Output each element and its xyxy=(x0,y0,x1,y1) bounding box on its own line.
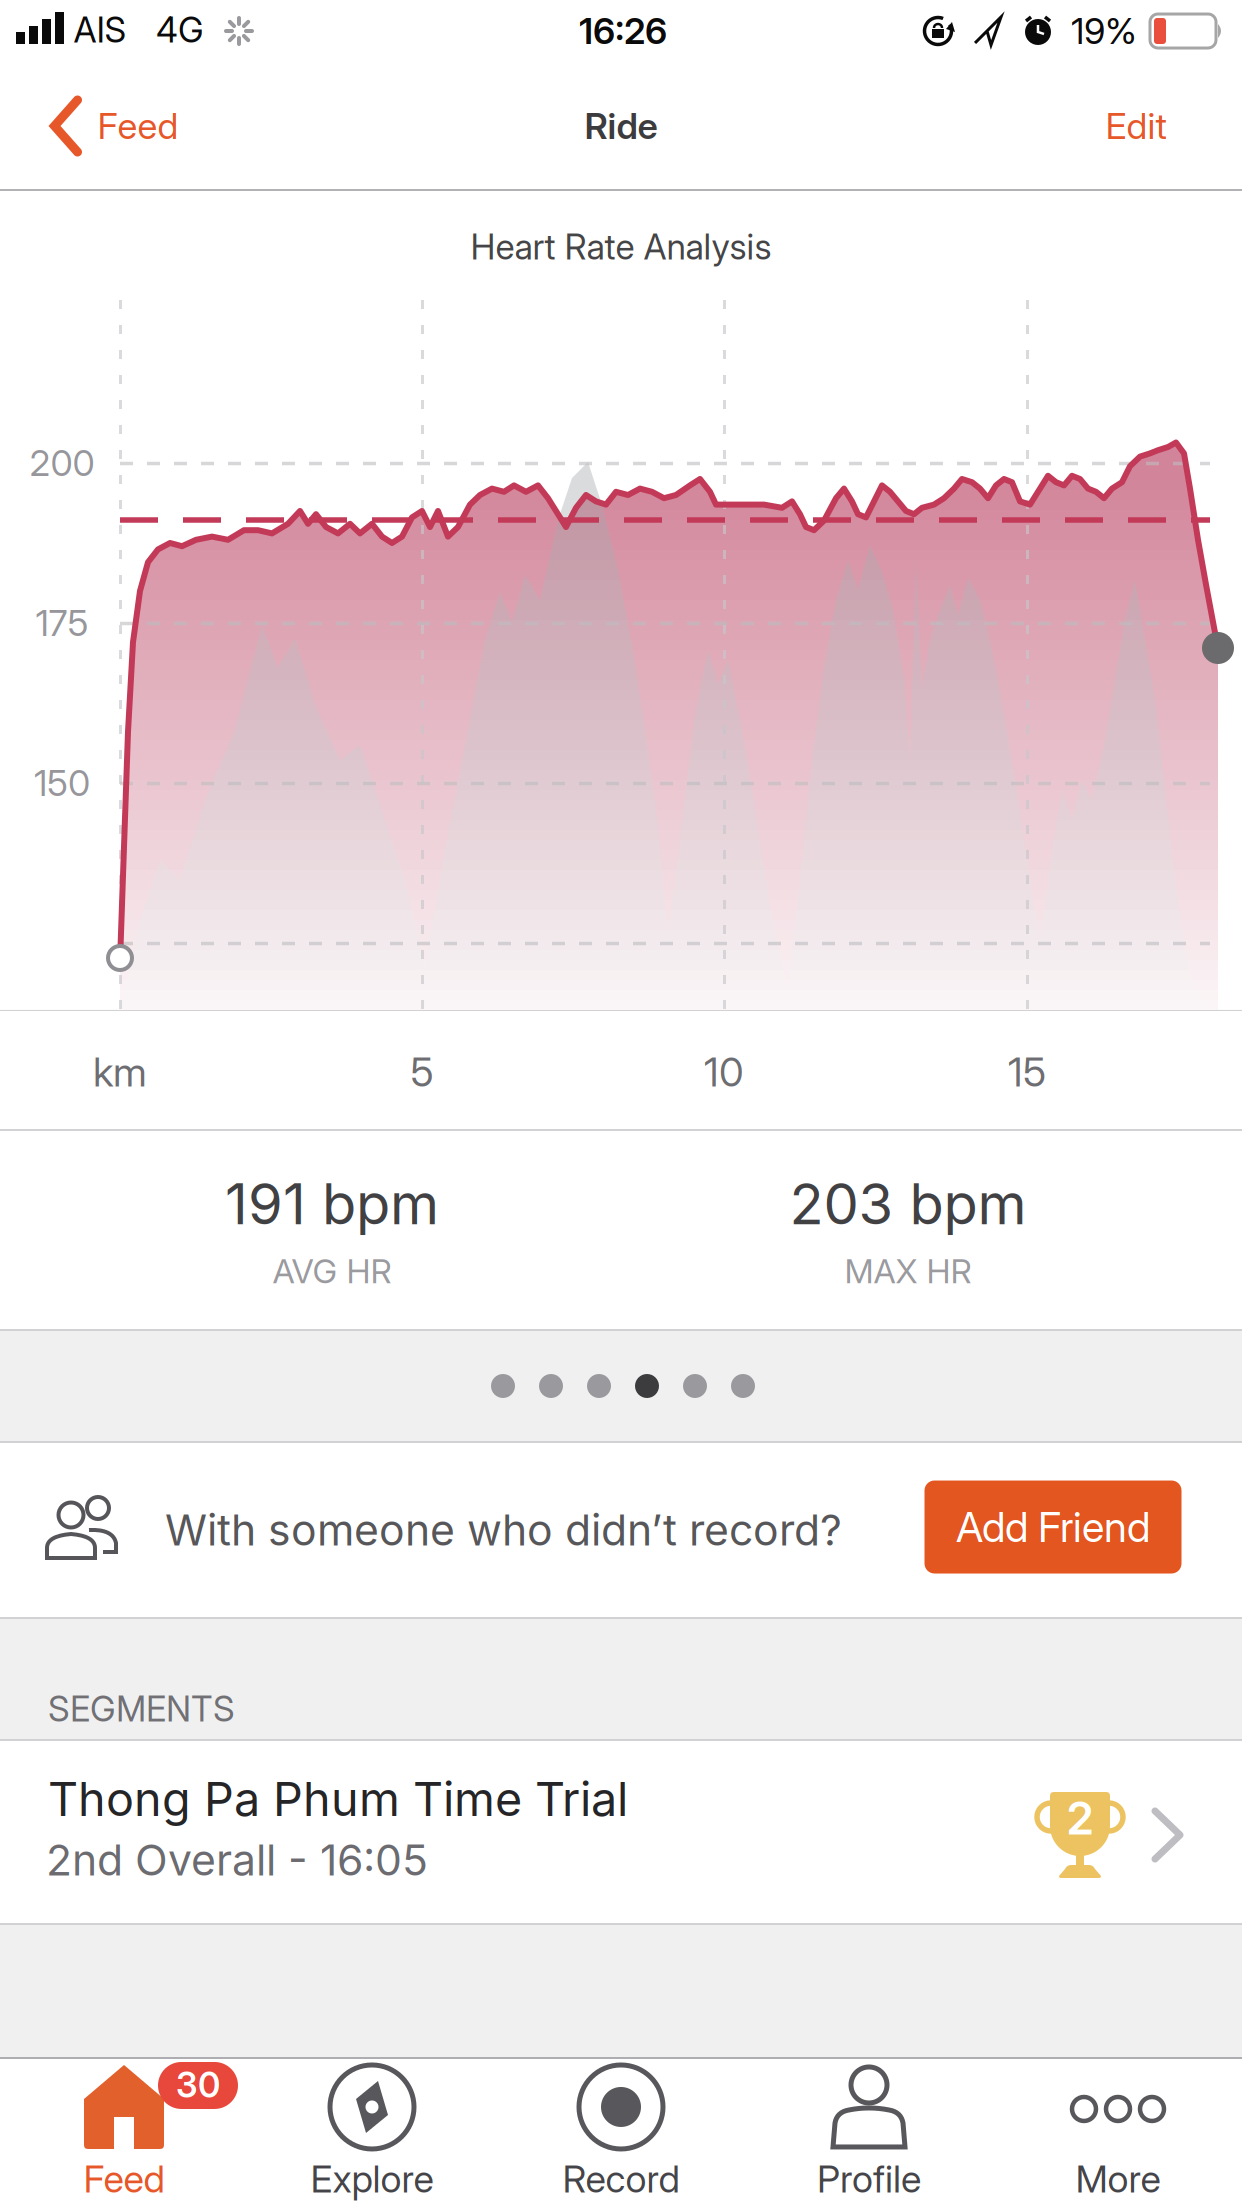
staticText: 16:26 xyxy=(579,10,667,52)
staticText: Heart Rate Analysis xyxy=(470,227,771,267)
staticText: Add Friend xyxy=(956,1503,1150,1551)
button[interactable]: Record xyxy=(497,2058,745,2208)
staticText: 10 xyxy=(704,1048,744,1096)
staticText: MAX HR xyxy=(844,1251,971,1291)
staticText: 203 bpm xyxy=(789,1171,1026,1237)
staticText: 19% xyxy=(1071,10,1137,52)
button[interactable]: More xyxy=(994,2058,1242,2208)
staticText: Explore xyxy=(310,2157,433,2201)
button[interactable]: Thong Pa Phum Time Trial xyxy=(0,1741,1242,1923)
staticText: Feed xyxy=(97,105,178,147)
staticText: 2 xyxy=(1066,1791,1094,1845)
staticText: 200 xyxy=(29,442,94,484)
staticText: km xyxy=(93,1048,147,1096)
staticText: AIS xyxy=(73,10,126,50)
staticText: 4G xyxy=(156,10,204,50)
button[interactable]: Explore xyxy=(248,2058,496,2208)
staticText: Edit xyxy=(1105,105,1166,147)
button[interactable]: 30 xyxy=(0,2058,248,2208)
staticText: 15 xyxy=(1008,1048,1046,1096)
staticText: With someone who didn’t record? xyxy=(165,1505,842,1555)
staticText: Profile xyxy=(817,2157,921,2201)
button[interactable]: Add Friend xyxy=(924,1480,1181,1573)
staticText: SEGMENTS xyxy=(48,1689,235,1729)
button[interactable]: Profile xyxy=(745,2058,993,2208)
staticText: 5 xyxy=(410,1048,433,1096)
staticText: AVG HR xyxy=(272,1251,391,1291)
staticText: Record xyxy=(562,2157,679,2201)
staticText: Feed xyxy=(83,2157,164,2201)
staticText: 175 xyxy=(35,602,88,644)
staticText: More xyxy=(1075,2157,1160,2201)
staticText: 191 bpm xyxy=(225,1171,439,1237)
staticText: 30 xyxy=(176,2064,220,2105)
button[interactable]: Edit xyxy=(1056,76,1216,176)
staticText: Thong Pa Phum Time Trial xyxy=(48,1771,628,1827)
staticText: 150 xyxy=(34,762,90,804)
staticText: Ride xyxy=(584,105,657,147)
button[interactable]: Feed xyxy=(49,76,178,176)
staticText: 2nd Overall - 16:05 xyxy=(46,1835,428,1885)
